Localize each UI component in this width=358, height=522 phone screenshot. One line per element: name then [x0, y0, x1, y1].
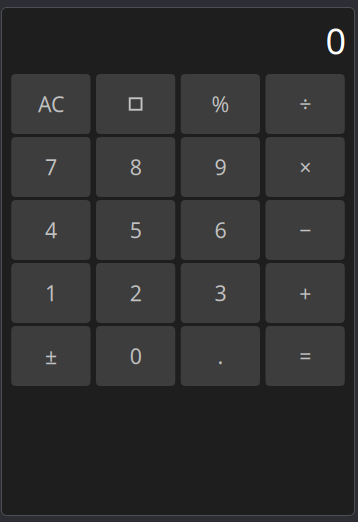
button[interactable]: Decimal point: [181, 326, 260, 386]
staticText: 9: [214, 153, 226, 181]
button[interactable]: 6: [181, 200, 260, 260]
button[interactable]: 7: [11, 137, 90, 197]
button[interactable]: 2: [96, 263, 175, 323]
staticText: 1: [45, 279, 57, 307]
button[interactable]: Minus: [265, 200, 345, 260]
staticText: 8: [130, 153, 142, 181]
button[interactable]: Toggle sign: [11, 326, 90, 386]
staticText: ±: [45, 342, 57, 370]
button[interactable]: 8: [96, 137, 175, 197]
button[interactable]: 0: [96, 326, 175, 386]
staticText: 3: [214, 279, 226, 307]
button[interactable]: Percent: [181, 74, 260, 134]
button[interactable]: Memory: [96, 74, 175, 134]
staticText: %: [211, 90, 229, 118]
button[interactable]: Multiply: [265, 137, 345, 197]
staticText: +: [299, 279, 311, 307]
staticText: 7: [45, 153, 57, 181]
staticText: 0: [130, 342, 142, 370]
button[interactable]: 3: [181, 263, 260, 323]
button[interactable]: 4: [11, 200, 90, 260]
staticText: =: [299, 342, 311, 370]
button[interactable]: 9: [181, 137, 260, 197]
staticText: AC: [38, 90, 64, 118]
staticText: 4: [45, 216, 57, 244]
staticText: 2: [130, 279, 142, 307]
staticText: −: [299, 216, 311, 244]
button[interactable]: All clear: [11, 74, 90, 134]
staticText: ÷: [299, 90, 311, 118]
staticText: .: [217, 342, 223, 370]
button[interactable]: 5: [96, 200, 175, 260]
staticText: 6: [214, 216, 226, 244]
button[interactable]: Equals: [265, 326, 345, 386]
button[interactable]: Plus: [265, 263, 345, 323]
staticText: ×: [299, 153, 311, 181]
button[interactable]: 1: [11, 263, 90, 323]
staticText: 5: [130, 216, 142, 244]
button[interactable]: Divide: [265, 74, 345, 134]
staticText: 0: [325, 17, 346, 64]
